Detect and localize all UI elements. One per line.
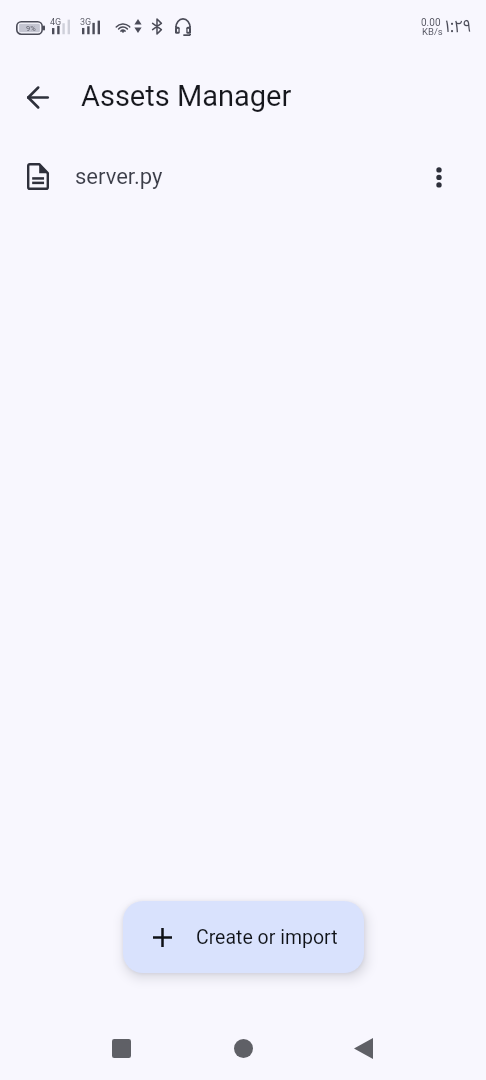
button[interactable]: Create or import xyxy=(123,901,364,973)
button[interactable]: More options xyxy=(415,153,462,200)
staticText: Assets Manager xyxy=(81,79,292,113)
button[interactable]: server.py xyxy=(0,146,486,207)
button[interactable]: Back xyxy=(325,1024,401,1072)
staticText: KB/s xyxy=(422,26,443,36)
staticText: server.py xyxy=(75,164,163,190)
staticText: 3G xyxy=(80,17,92,28)
staticText: 9% xyxy=(26,24,36,33)
button[interactable]: Home xyxy=(205,1024,281,1072)
staticText: 0.00 xyxy=(421,17,441,26)
button[interactable]: Back xyxy=(14,73,62,121)
staticText: 4G xyxy=(50,17,62,28)
staticText: ١:٢٩ xyxy=(445,14,472,37)
button[interactable]: Recents xyxy=(83,1024,159,1072)
staticText: Create or import xyxy=(196,926,338,949)
